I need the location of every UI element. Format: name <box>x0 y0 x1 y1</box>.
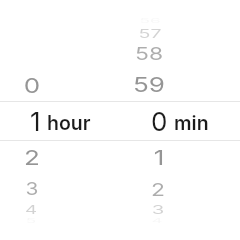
button[interactable]: Minutes wheel <box>120 0 240 240</box>
staticText: 58 <box>114 43 184 64</box>
staticText: 1 <box>30 106 41 137</box>
staticText: 57 <box>120 26 180 40</box>
staticText: 2 <box>0 145 72 170</box>
staticText: 2 <box>123 179 193 200</box>
staticText: 3 <box>0 178 64 199</box>
staticText: 59 <box>109 72 189 97</box>
staticText: 3 <box>127 202 189 216</box>
staticText: hour <box>47 111 91 135</box>
button[interactable]: Hours, 1 hour <box>0 102 120 140</box>
staticText: 4 <box>2 202 60 216</box>
staticText: 0 <box>0 73 72 98</box>
staticText: 1 <box>119 145 199 170</box>
button[interactable]: Hours wheel <box>0 0 120 240</box>
staticText: 0 <box>151 106 168 137</box>
button[interactable]: Minutes, 0 min <box>120 102 240 140</box>
staticText: min <box>174 111 209 135</box>
